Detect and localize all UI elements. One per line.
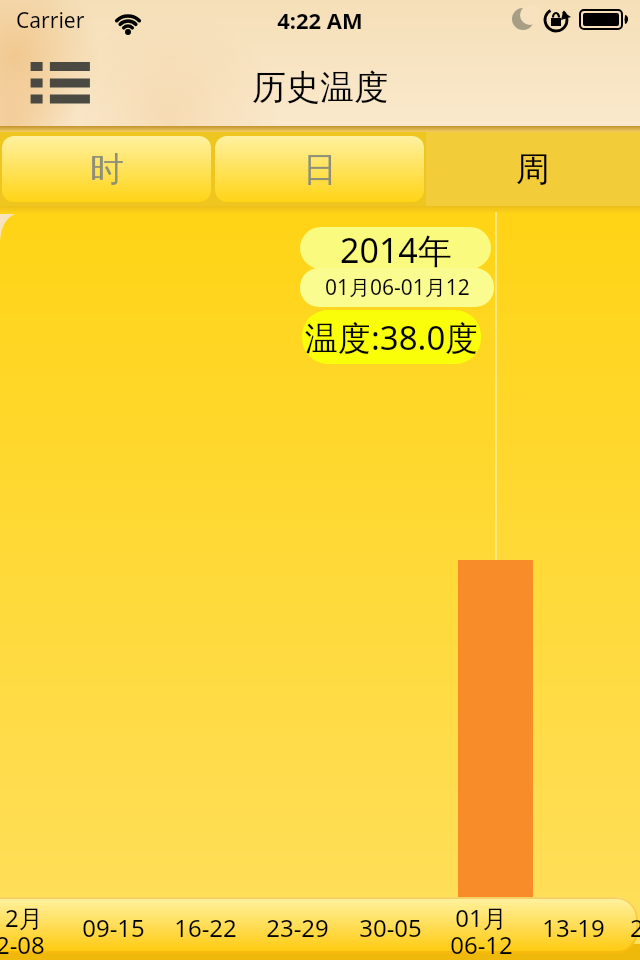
- staticText: 时: [90, 148, 124, 191]
- staticText: 2014年: [340, 227, 452, 269]
- button[interactable]: 周: [426, 132, 640, 206]
- staticText: 23-29: [266, 911, 329, 944]
- staticText: 20: [630, 911, 640, 944]
- staticText: 温度:38.0度: [305, 315, 479, 360]
- staticText: 01月: [455, 901, 507, 934]
- staticText: 历史温度: [252, 66, 388, 109]
- staticText: 16-22: [174, 911, 237, 944]
- staticText: 02-08: [0, 928, 45, 960]
- staticText: 周: [516, 148, 550, 191]
- staticText: 09-15: [82, 911, 145, 944]
- staticText: 01月06-01月12: [325, 273, 470, 302]
- staticText: 13-19: [542, 911, 605, 944]
- staticText: Carrier: [16, 6, 85, 35]
- button[interactable]: 日: [215, 136, 424, 202]
- staticText: 12月: [0, 901, 43, 934]
- staticText: 4:22 AM: [277, 5, 363, 35]
- staticText: 06-12: [450, 928, 513, 960]
- staticText: 日: [303, 148, 337, 191]
- button[interactable]: [14, 48, 104, 114]
- staticText: 30-05: [359, 911, 422, 944]
- button[interactable]: 时: [2, 136, 211, 202]
